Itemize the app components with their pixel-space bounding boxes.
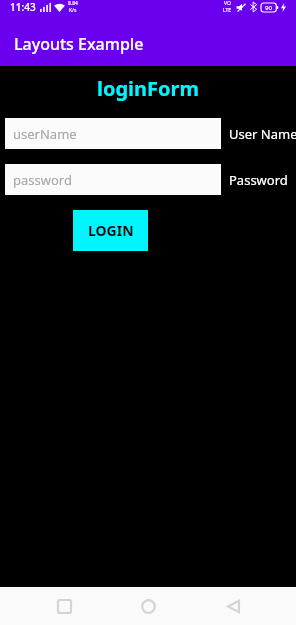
button[interactable]: LOGIN bbox=[73, 210, 148, 251]
button[interactable]: Recents bbox=[43, 587, 85, 625]
staticText: userName bbox=[13, 125, 77, 143]
staticText: VO bbox=[224, 0, 231, 7]
staticText: loginForm bbox=[97, 75, 199, 102]
staticText: Password bbox=[229, 171, 288, 189]
staticText: K/s bbox=[69, 7, 77, 14]
staticText: LTE bbox=[223, 7, 232, 14]
button[interactable]: password bbox=[5, 164, 221, 195]
staticText: 11:43 bbox=[10, 0, 36, 14]
staticText: 90 bbox=[265, 4, 272, 12]
staticText: 8.84 bbox=[68, 0, 78, 7]
button[interactable]: Home bbox=[127, 587, 169, 625]
button[interactable]: Back bbox=[212, 587, 254, 625]
staticText: LOGIN bbox=[88, 221, 134, 240]
staticText: password bbox=[13, 171, 72, 189]
button[interactable]: userName bbox=[5, 118, 221, 149]
staticText: Layouts Example bbox=[14, 33, 144, 55]
staticText: User Name bbox=[229, 125, 296, 143]
